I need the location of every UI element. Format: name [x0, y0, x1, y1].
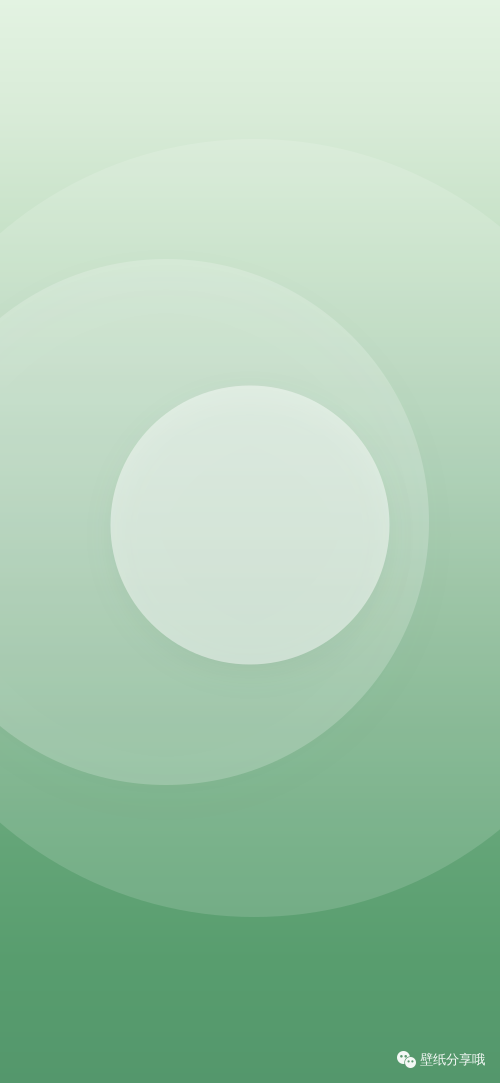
staticText: 壁纸分享哦 [420, 1051, 485, 1068]
